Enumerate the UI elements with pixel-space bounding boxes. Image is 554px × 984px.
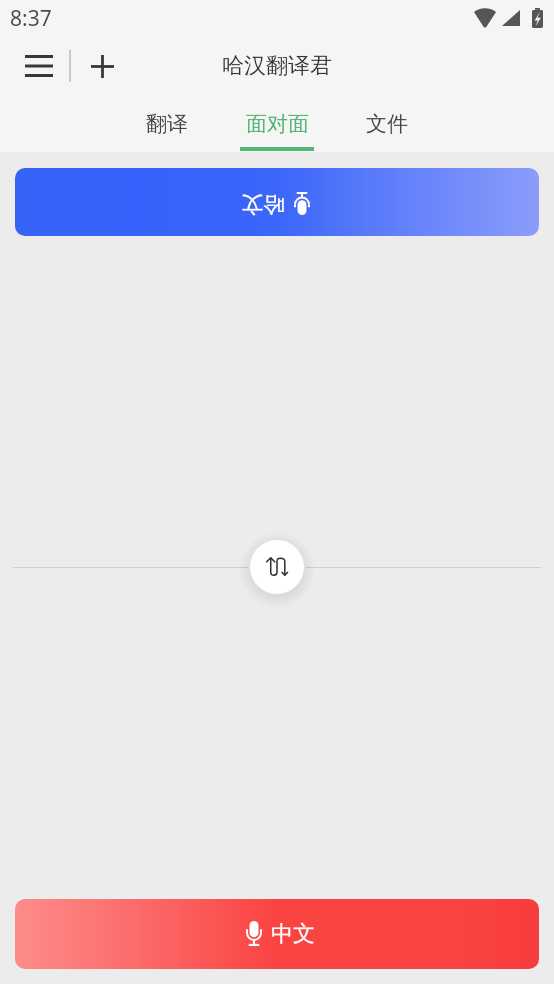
staticText: 中文 bbox=[271, 920, 315, 948]
staticText: 翻译 bbox=[146, 111, 188, 137]
staticText: 面对面 bbox=[246, 111, 309, 137]
staticText: 哈汉翻译君 bbox=[222, 52, 332, 80]
staticText: 文件 bbox=[366, 111, 408, 137]
button[interactable]: Add bbox=[71, 36, 134, 96]
button[interactable]: 翻译 bbox=[112, 96, 222, 152]
button[interactable]: 文件 bbox=[332, 96, 442, 152]
button[interactable]: 哈文 bbox=[15, 168, 539, 236]
button[interactable]: 中文 bbox=[15, 899, 539, 969]
button[interactable]: 面对面 bbox=[222, 96, 332, 152]
staticText: 哈文 bbox=[241, 190, 285, 218]
button[interactable]: Menu bbox=[0, 36, 69, 96]
staticText: 8:37 bbox=[10, 4, 52, 33]
button[interactable]: Swap languages bbox=[250, 540, 304, 594]
